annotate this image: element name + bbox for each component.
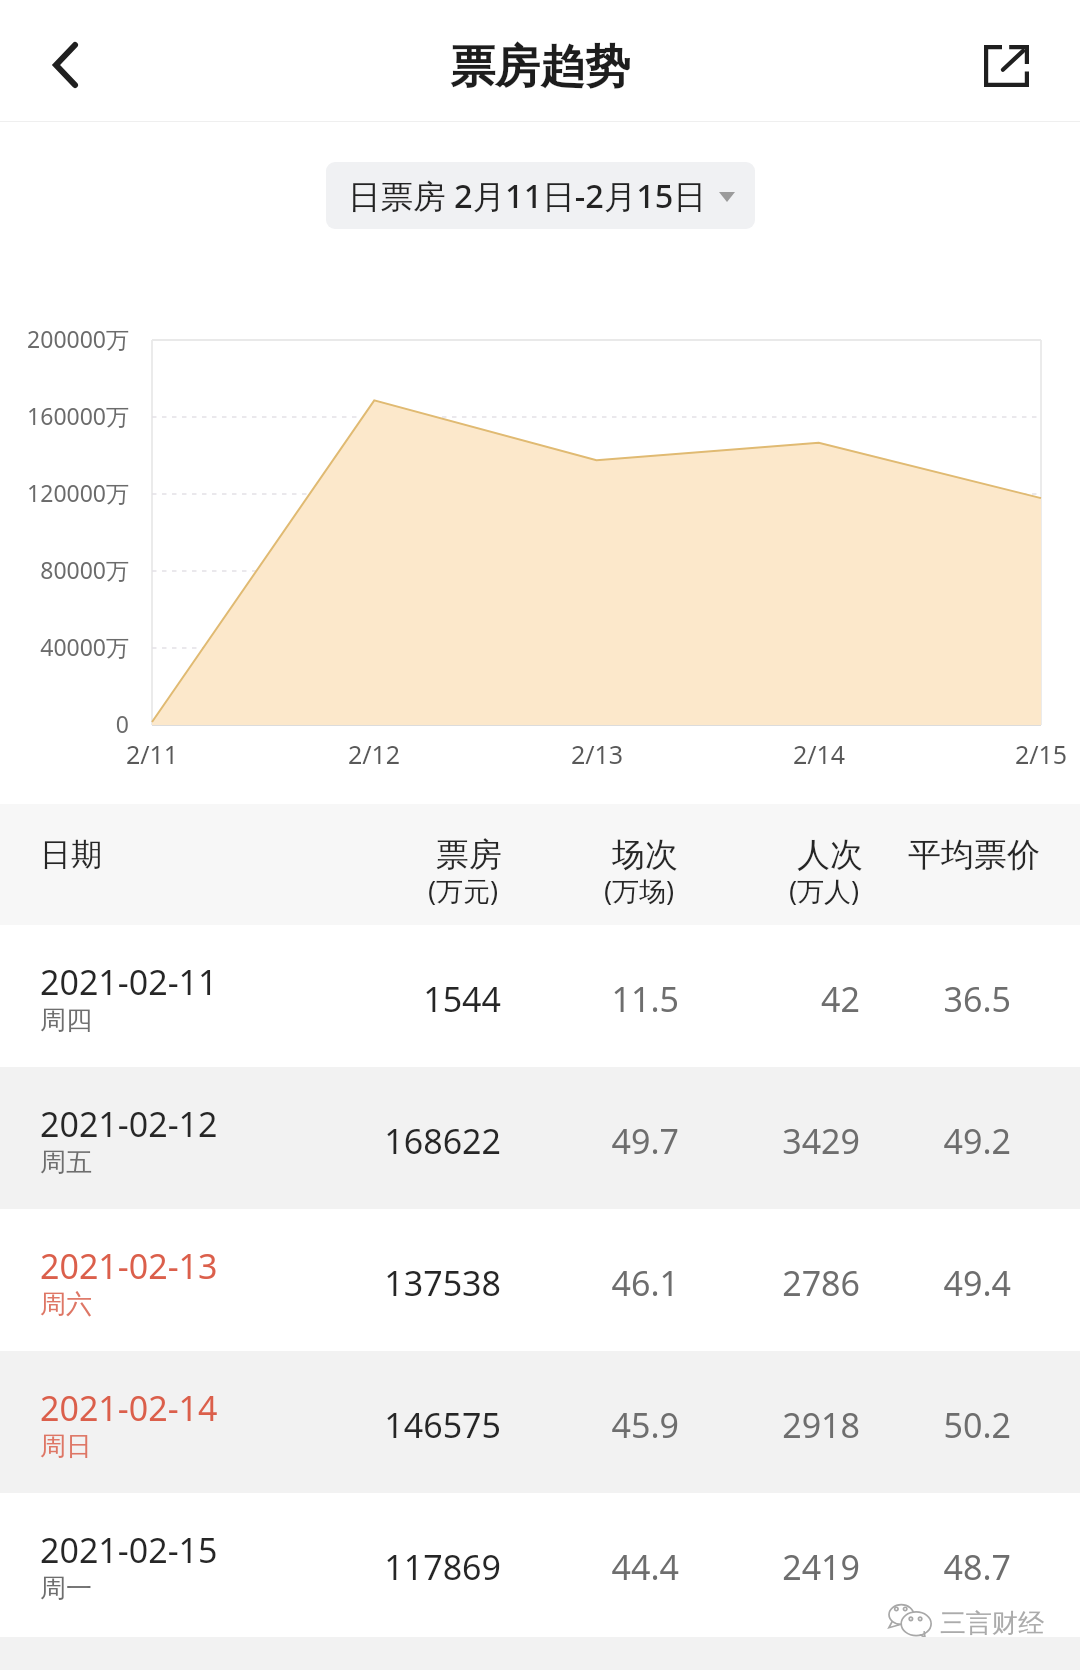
staticText: 周一 xyxy=(40,1572,92,1605)
staticText: 2021-02-11 xyxy=(40,959,218,1005)
staticText: 1544 xyxy=(201,976,501,1022)
staticText: 2021-02-13 xyxy=(40,1243,218,1289)
staticText: 48.7 xyxy=(711,1544,1011,1590)
staticText: 2/14 xyxy=(739,737,899,771)
staticText: 50.2 xyxy=(711,1402,1011,1448)
staticText: 周六 xyxy=(40,1288,92,1321)
staticText: 人次 xyxy=(680,834,980,876)
staticText: 2786 xyxy=(560,1260,860,1306)
staticText: 80000万 xyxy=(0,554,129,585)
staticText: 160000万 xyxy=(0,400,129,431)
button[interactable]: Share xyxy=(972,32,1040,100)
staticText: (万人) xyxy=(674,872,974,909)
staticText: 49.7 xyxy=(379,1118,679,1164)
staticText: 三言财经 xyxy=(940,1607,1044,1640)
staticText: 40000万 xyxy=(0,631,129,662)
staticText: 2/11 xyxy=(72,737,232,771)
staticText: 117869 xyxy=(201,1544,501,1590)
button[interactable]: Back xyxy=(29,29,101,101)
staticText: 120000万 xyxy=(0,477,129,508)
staticText: 49.2 xyxy=(711,1118,1011,1164)
staticText: 2/15 xyxy=(961,737,1080,771)
staticText: 2021-02-12 xyxy=(40,1101,218,1147)
button[interactable]: 2021-02-11 xyxy=(0,925,1080,1067)
staticText: 45.9 xyxy=(379,1402,679,1448)
staticText: (万场) xyxy=(489,872,789,909)
staticText: 2419 xyxy=(560,1544,860,1590)
staticText: (万元) xyxy=(313,872,613,909)
staticText: 场次 xyxy=(495,834,795,876)
staticText: 票房 xyxy=(319,834,619,876)
staticText: 2/13 xyxy=(517,737,677,771)
staticText: 0 xyxy=(0,708,129,739)
staticText: 3429 xyxy=(560,1118,860,1164)
staticText: 日期 xyxy=(40,835,102,874)
staticText: 周日 xyxy=(40,1430,92,1463)
button[interactable]: 2021-02-12 xyxy=(0,1067,1080,1209)
staticText: 137538 xyxy=(201,1260,501,1306)
button[interactable]: 日票房 2月11日-2月15日 xyxy=(326,162,755,229)
staticText: 42 xyxy=(560,976,860,1022)
button[interactable]: 2021-02-14 xyxy=(0,1351,1080,1493)
button[interactable]: 2021-02-13 xyxy=(0,1209,1080,1351)
staticText: 周五 xyxy=(40,1146,92,1179)
staticText: 票房趋势 xyxy=(450,39,630,96)
staticText: 2/12 xyxy=(294,737,454,771)
staticText: 周四 xyxy=(40,1004,92,1037)
staticText: 平均票价 xyxy=(824,834,1080,876)
staticText: 168622 xyxy=(201,1118,501,1164)
staticText: 49.4 xyxy=(711,1260,1011,1306)
staticText: 2021-02-14 xyxy=(40,1385,218,1431)
staticText: 200000万 xyxy=(0,323,129,354)
staticText: 2021-02-15 xyxy=(40,1527,218,1573)
staticText: 11.5 xyxy=(379,976,679,1022)
button[interactable]: 2021-02-15 xyxy=(0,1493,1080,1635)
staticText: 46.1 xyxy=(379,1260,679,1306)
staticText: 146575 xyxy=(201,1402,501,1448)
staticText: 36.5 xyxy=(711,976,1011,1022)
staticText: 日票房 2月11日-2月15日 xyxy=(348,173,706,217)
staticText: 44.4 xyxy=(379,1544,679,1590)
staticText: 2918 xyxy=(560,1402,860,1448)
